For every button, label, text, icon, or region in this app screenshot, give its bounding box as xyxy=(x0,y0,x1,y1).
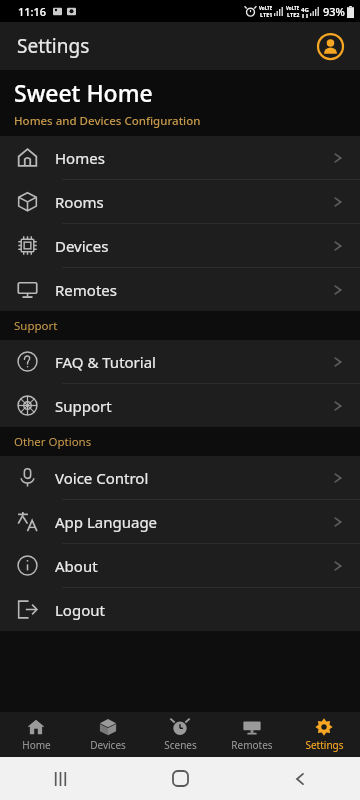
staticText: Voice Control xyxy=(55,468,334,488)
button[interactable]: Homes xyxy=(0,136,360,179)
button[interactable]: FAQ & Tutorial xyxy=(0,340,360,383)
staticText: Devices xyxy=(55,236,334,256)
button[interactable]: Settings xyxy=(288,712,360,757)
staticText: Settings xyxy=(305,738,344,752)
staticText: VoLTE xyxy=(286,5,300,11)
button[interactable]: Recent apps xyxy=(0,757,120,800)
button[interactable]: Scenes xyxy=(144,712,216,757)
button[interactable]: Logout xyxy=(0,588,360,631)
staticText: Rooms xyxy=(55,192,334,212)
staticText: Remotes xyxy=(231,738,273,752)
staticText: Remotes xyxy=(55,280,334,300)
staticText: Support xyxy=(55,396,334,416)
button[interactable]: Back xyxy=(240,757,360,800)
staticText: FAQ & Tutorial xyxy=(55,352,334,372)
staticText: Logout xyxy=(55,600,334,620)
staticText: LTE2 xyxy=(287,11,300,18)
staticText: Support xyxy=(14,318,58,334)
staticText: Homes and Devices Configuration xyxy=(14,113,201,129)
staticText: LTE1 xyxy=(260,11,273,18)
button[interactable]: Devices xyxy=(0,224,360,267)
staticText: Settings xyxy=(17,33,90,59)
staticText: About xyxy=(55,556,334,576)
button[interactable]: About xyxy=(0,544,360,587)
button[interactable]: Home xyxy=(0,712,72,757)
button[interactable]: Support xyxy=(0,384,360,427)
button[interactable]: Remotes xyxy=(216,712,288,757)
button[interactable]: Remotes xyxy=(0,268,360,311)
button[interactable]: Voice Control xyxy=(0,456,360,499)
staticText: Homes xyxy=(55,148,334,168)
staticText: 4G xyxy=(301,6,309,14)
staticText: App Language xyxy=(55,512,334,532)
button[interactable]: App Language xyxy=(0,500,360,543)
staticText: 93% xyxy=(323,4,345,19)
staticText: Scenes xyxy=(164,738,197,752)
staticText: Other Options xyxy=(14,434,92,450)
button[interactable]: Home xyxy=(120,757,240,800)
button[interactable]: Profile xyxy=(312,28,348,64)
button[interactable]: Rooms xyxy=(0,180,360,223)
staticText: Devices xyxy=(90,738,126,752)
staticText: 11:16 xyxy=(18,4,47,19)
staticText: Home xyxy=(22,738,51,752)
button[interactable]: Devices xyxy=(72,712,144,757)
staticText: Sweet Home xyxy=(14,77,153,108)
staticText: VoLTE xyxy=(259,5,273,11)
